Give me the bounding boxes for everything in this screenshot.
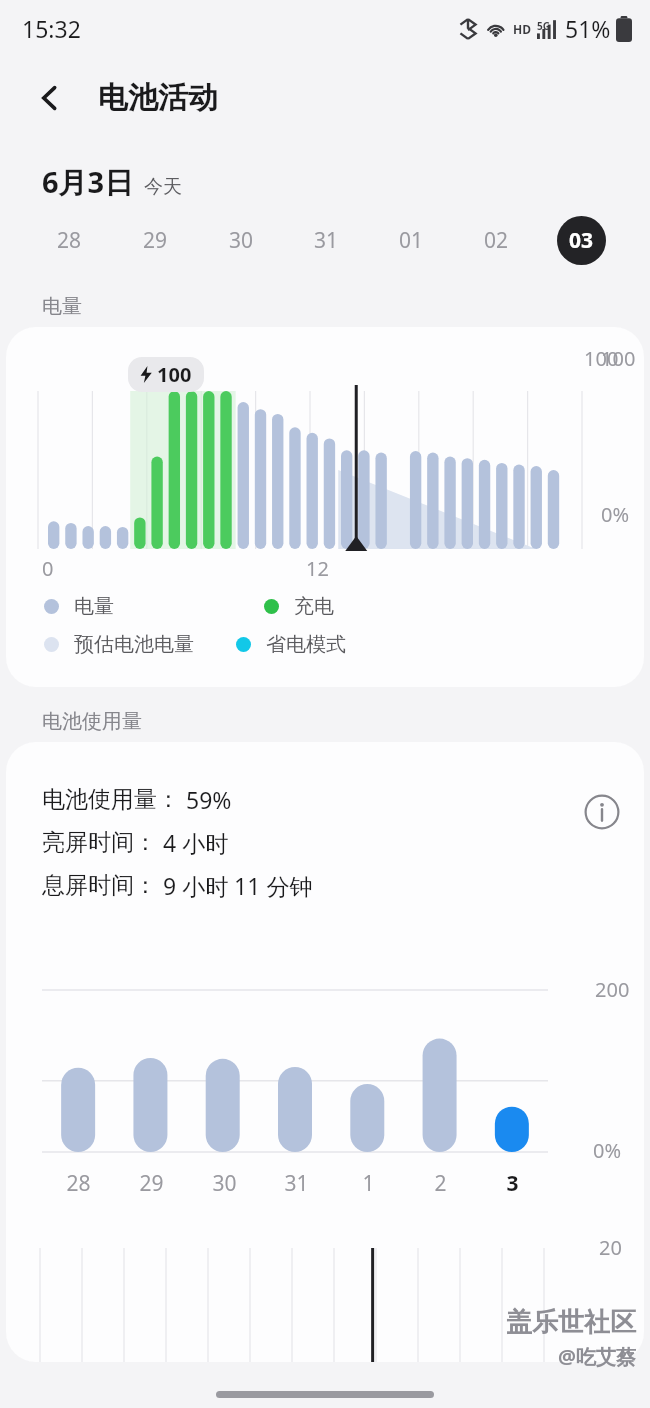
staticText: 充电 <box>294 594 334 619</box>
staticText: 28 <box>57 226 82 255</box>
staticText: 29 <box>143 226 168 255</box>
staticText: 电池使用量： <box>42 785 180 814</box>
staticText: 200 <box>595 976 630 1003</box>
staticText: 6月3日 <box>42 162 134 202</box>
staticText: 12 <box>306 555 329 582</box>
staticText: 省电模式 <box>266 632 346 657</box>
button[interactable]: 03 <box>539 202 624 278</box>
staticText: 01 <box>399 226 424 255</box>
staticText: 30 <box>229 226 254 255</box>
staticText: 电量 <box>42 294 82 319</box>
staticText: 1 <box>362 1169 375 1198</box>
staticText: 0% <box>601 501 630 528</box>
staticText: 电池活动 <box>98 79 218 117</box>
button[interactable]: 02 <box>454 202 539 278</box>
button[interactable]: 28 <box>26 202 112 278</box>
staticText: 2 <box>434 1169 447 1198</box>
staticText: 59% <box>186 784 232 815</box>
staticText: 02 <box>484 226 509 255</box>
staticText: 03 <box>569 226 594 255</box>
staticText: 5G <box>537 19 550 33</box>
button[interactable]: 29 <box>112 202 198 278</box>
staticText: 20 <box>599 1234 622 1261</box>
button[interactable]: 30 <box>198 202 284 278</box>
staticText: 31 <box>284 1169 309 1198</box>
staticText: 盖乐世社区 <box>506 1306 636 1339</box>
staticText: @吃艾蔡 <box>558 1343 636 1370</box>
button[interactable]: 01 <box>369 202 454 278</box>
staticText: 息屏时间： <box>42 871 157 900</box>
staticText: 3 <box>506 1169 519 1198</box>
button[interactable]: 100 <box>6 327 644 687</box>
staticText: 今天 <box>144 175 182 199</box>
button[interactable]: Info <box>580 790 624 834</box>
staticText: 51% <box>565 13 611 44</box>
staticText: 电池使用量 <box>42 709 142 734</box>
staticText: HD <box>513 21 531 37</box>
staticText: 0% <box>593 1137 622 1164</box>
staticText: 电量 <box>74 594 114 619</box>
staticText: 30 <box>212 1169 237 1198</box>
staticText: 15:32 <box>22 13 81 44</box>
staticText: 9 小时 11 分钟 <box>163 870 313 901</box>
staticText: 亮屏时间： <box>42 828 157 857</box>
staticText: 4 小时 <box>163 827 229 858</box>
staticText: 31 <box>314 226 339 255</box>
button[interactable]: Back <box>24 72 76 124</box>
staticText: 29 <box>139 1169 164 1198</box>
staticText: 100 <box>157 361 192 388</box>
staticText: 0 <box>42 555 54 582</box>
staticText: 预估电池电量 <box>74 632 194 657</box>
staticText: 100 <box>601 345 636 372</box>
staticText: 100 <box>584 345 619 372</box>
staticText: 28 <box>66 1169 91 1198</box>
button[interactable]: 31 <box>284 202 369 278</box>
